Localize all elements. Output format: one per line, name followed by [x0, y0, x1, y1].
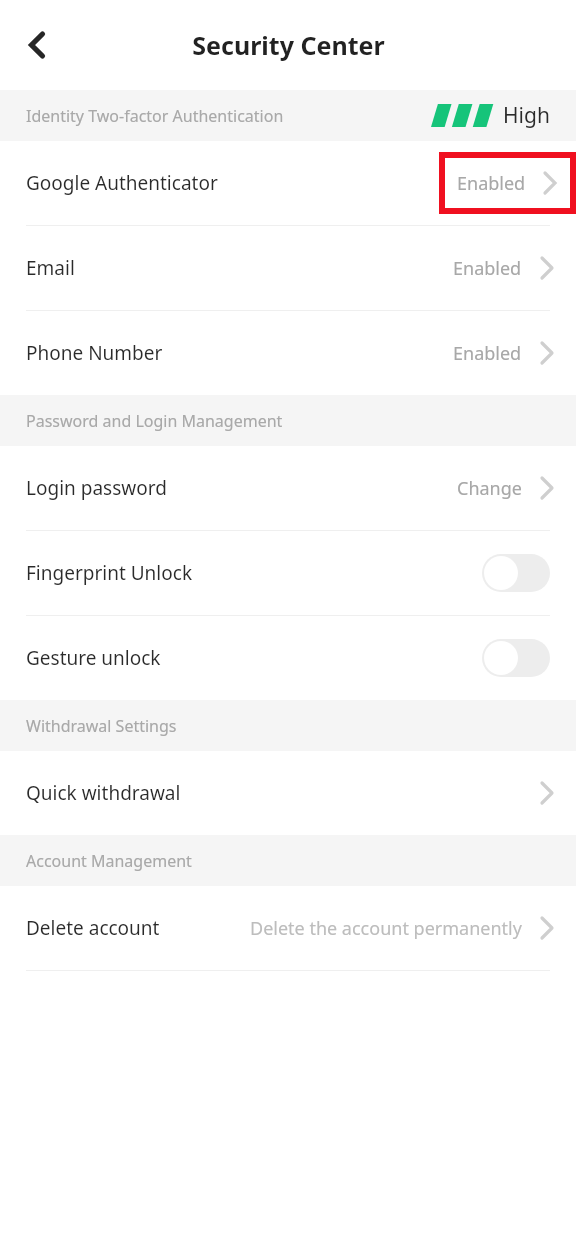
staticText: Account Management — [26, 850, 192, 872]
button[interactable]: Google Authenticator — [0, 141, 576, 225]
button[interactable]: Login password — [0, 446, 576, 530]
staticText: Security Center — [192, 28, 385, 62]
button[interactable]: Gesture unlock — [0, 616, 576, 700]
staticText: Enabled — [453, 256, 522, 281]
staticText: Enabled — [457, 171, 526, 196]
staticText: Phone Number — [26, 340, 163, 366]
staticText: Fingerprint Unlock — [26, 560, 193, 586]
button[interactable]: Quick withdrawal — [0, 751, 576, 835]
other: Fingerprint Unlock toggle, off — [482, 554, 550, 592]
button[interactable]: Phone Number — [0, 311, 576, 395]
staticText: Gesture unlock — [26, 645, 161, 671]
staticText: Change — [457, 476, 522, 501]
staticText: High — [503, 101, 550, 130]
staticText: Delete the account permanently — [250, 916, 522, 941]
staticText: Email — [26, 255, 75, 281]
staticText: Quick withdrawal — [26, 780, 181, 806]
button[interactable]: Fingerprint Unlock — [0, 531, 576, 615]
staticText: Password and Login Management — [26, 410, 283, 432]
staticText: Enabled — [453, 341, 522, 366]
staticText: Identity Two-factor Authentication — [26, 105, 284, 127]
button[interactable]: Email — [0, 226, 576, 310]
staticText: Delete account — [26, 915, 160, 941]
button[interactable]: Back — [10, 19, 62, 71]
button[interactable]: Delete account — [0, 886, 576, 970]
other: Gesture unlock toggle, off — [482, 639, 550, 677]
staticText: Google Authenticator — [26, 170, 218, 196]
staticText: Withdrawal Settings — [26, 715, 177, 737]
staticText: Login password — [26, 475, 167, 501]
